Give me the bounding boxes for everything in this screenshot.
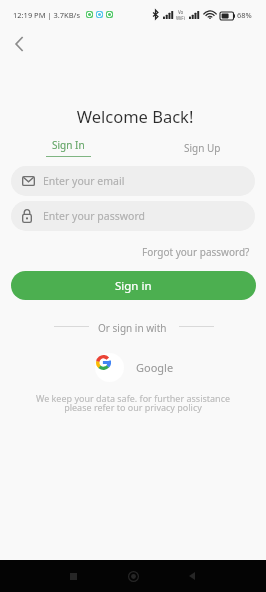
staticText: 12:19 PM | 3.7KB/s bbox=[13, 10, 80, 20]
button[interactable]: Back bbox=[181, 565, 203, 587]
staticText: Sign Up bbox=[184, 141, 221, 155]
button[interactable]: Back bbox=[8, 33, 30, 55]
button[interactable]: Recent apps bbox=[62, 565, 84, 587]
staticText: Enter your email bbox=[43, 174, 125, 188]
button[interactable]: Sign in bbox=[11, 271, 256, 300]
button[interactable]: Home bbox=[122, 565, 144, 587]
staticText: Vo bbox=[178, 9, 184, 15]
staticText: 68% bbox=[237, 10, 252, 20]
button[interactable]: Enter your password bbox=[11, 201, 255, 231]
staticText: Forgot your password? bbox=[142, 245, 250, 259]
staticText: Sign in bbox=[115, 278, 152, 294]
staticText: Welcome Back! bbox=[2, 105, 266, 127]
staticText: Or sign in with bbox=[98, 321, 167, 335]
button[interactable]: Google bbox=[94, 352, 174, 383]
button[interactable]: Enter your email bbox=[11, 166, 255, 196]
button[interactable]: Sign In bbox=[45, 138, 92, 157]
staticText: We keep your data safe. for further assi… bbox=[0, 392, 266, 414]
button[interactable]: Forgot your password? bbox=[139, 243, 253, 261]
staticText: Enter your password bbox=[43, 209, 145, 223]
staticText: WiFi bbox=[176, 15, 185, 21]
staticText: Sign In bbox=[52, 138, 85, 152]
button[interactable]: Sign Up bbox=[179, 139, 226, 157]
staticText: Google bbox=[136, 360, 174, 375]
